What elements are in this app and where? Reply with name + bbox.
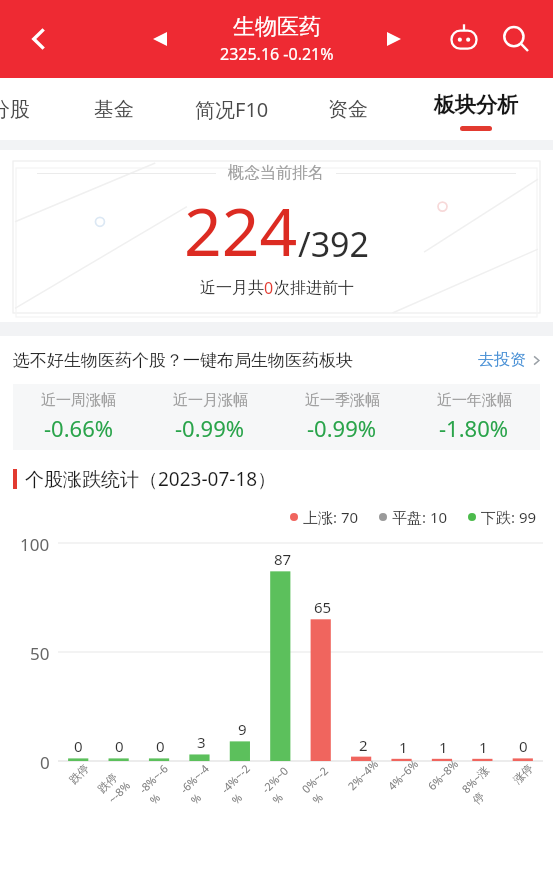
button[interactable]: 板块分析 [398, 78, 553, 140]
staticText: 50 [30, 642, 50, 665]
button[interactable]: Assistant [441, 16, 487, 62]
staticText: 2325.16 -0.21% [220, 43, 334, 65]
staticText: 生物医药 [233, 13, 321, 41]
staticText: 0 [519, 736, 528, 756]
staticText: 0 [74, 736, 83, 756]
staticText: 0 [156, 736, 165, 756]
staticText: 9 [238, 719, 247, 739]
staticText: 近一周涨幅 [41, 391, 116, 410]
staticText: 简况F10 [195, 96, 269, 123]
staticText: 2 [359, 735, 368, 755]
staticText: 近一年涨幅 [437, 391, 512, 410]
staticText: 1 [479, 737, 488, 757]
staticText: -8%~-6% [135, 757, 186, 807]
staticText: -2%~0% [258, 757, 308, 807]
staticText: -0.99% [307, 413, 377, 443]
button[interactable]: Previous sector [142, 21, 178, 57]
staticText: 224 [184, 185, 298, 275]
staticText: 1 [439, 737, 448, 757]
staticText: 次排进前十 [274, 278, 354, 298]
staticText: -0.66% [44, 413, 114, 443]
staticText: 1 [399, 737, 408, 757]
staticText: 选不好生物医药个股？一键布局生物医药板块 [13, 350, 353, 371]
staticText: /392 [298, 221, 369, 267]
staticText: 平盘: 10 [392, 507, 448, 527]
staticText: 涨停 [510, 761, 536, 787]
staticText: 上涨: 70 [303, 507, 359, 527]
staticText: 8%~涨停 [458, 757, 508, 807]
staticText: -1.80% [439, 413, 509, 443]
staticText: 跌停~-8% [95, 757, 144, 806]
button[interactable]: 资金 [298, 78, 398, 140]
staticText: 近一季涨幅 [305, 391, 380, 410]
staticText: 资金 [328, 97, 368, 122]
button[interactable]: Search [493, 16, 539, 62]
staticText: -6%~-4% [176, 757, 227, 807]
staticText: 下跌: 99 [481, 507, 537, 527]
button[interactable]: 简况F10 [166, 78, 298, 140]
button[interactable]: 分股 [0, 78, 62, 140]
staticText: 去投资 [478, 350, 526, 370]
staticText: 概念当前排名 [228, 163, 324, 183]
staticText: 6%~8% [424, 756, 462, 793]
staticText: 近一月共 [200, 278, 264, 298]
staticText: 2%~4% [344, 756, 382, 793]
staticText: 3 [197, 732, 206, 752]
staticText: -0.99% [175, 413, 245, 443]
button[interactable]: 基金 [62, 78, 166, 140]
staticText: 0%~-2% [298, 757, 348, 807]
staticText: 基金 [94, 97, 134, 122]
staticText: 65 [314, 597, 332, 617]
staticText: 个股涨跌统计（2023-07-18） [25, 466, 277, 492]
staticText: 100 [20, 533, 50, 556]
staticText: 0 [40, 751, 50, 774]
staticText: 0 [115, 736, 124, 756]
staticText: 近一月涨幅 [173, 391, 248, 410]
staticText: 4%~6% [384, 756, 422, 793]
button[interactable]: Next sector [376, 21, 412, 57]
staticText: 87 [274, 549, 292, 569]
staticText: 板块分析 [434, 92, 518, 118]
button[interactable]: Back [16, 16, 62, 62]
staticText: 跌停 [66, 761, 92, 787]
staticText: -4%~-2% [217, 757, 268, 807]
button[interactable]: 选不好生物医药个股？一键布局生物医药板块 [0, 336, 553, 384]
staticText: 0 [264, 277, 274, 299]
staticText: 分股 [0, 97, 30, 122]
